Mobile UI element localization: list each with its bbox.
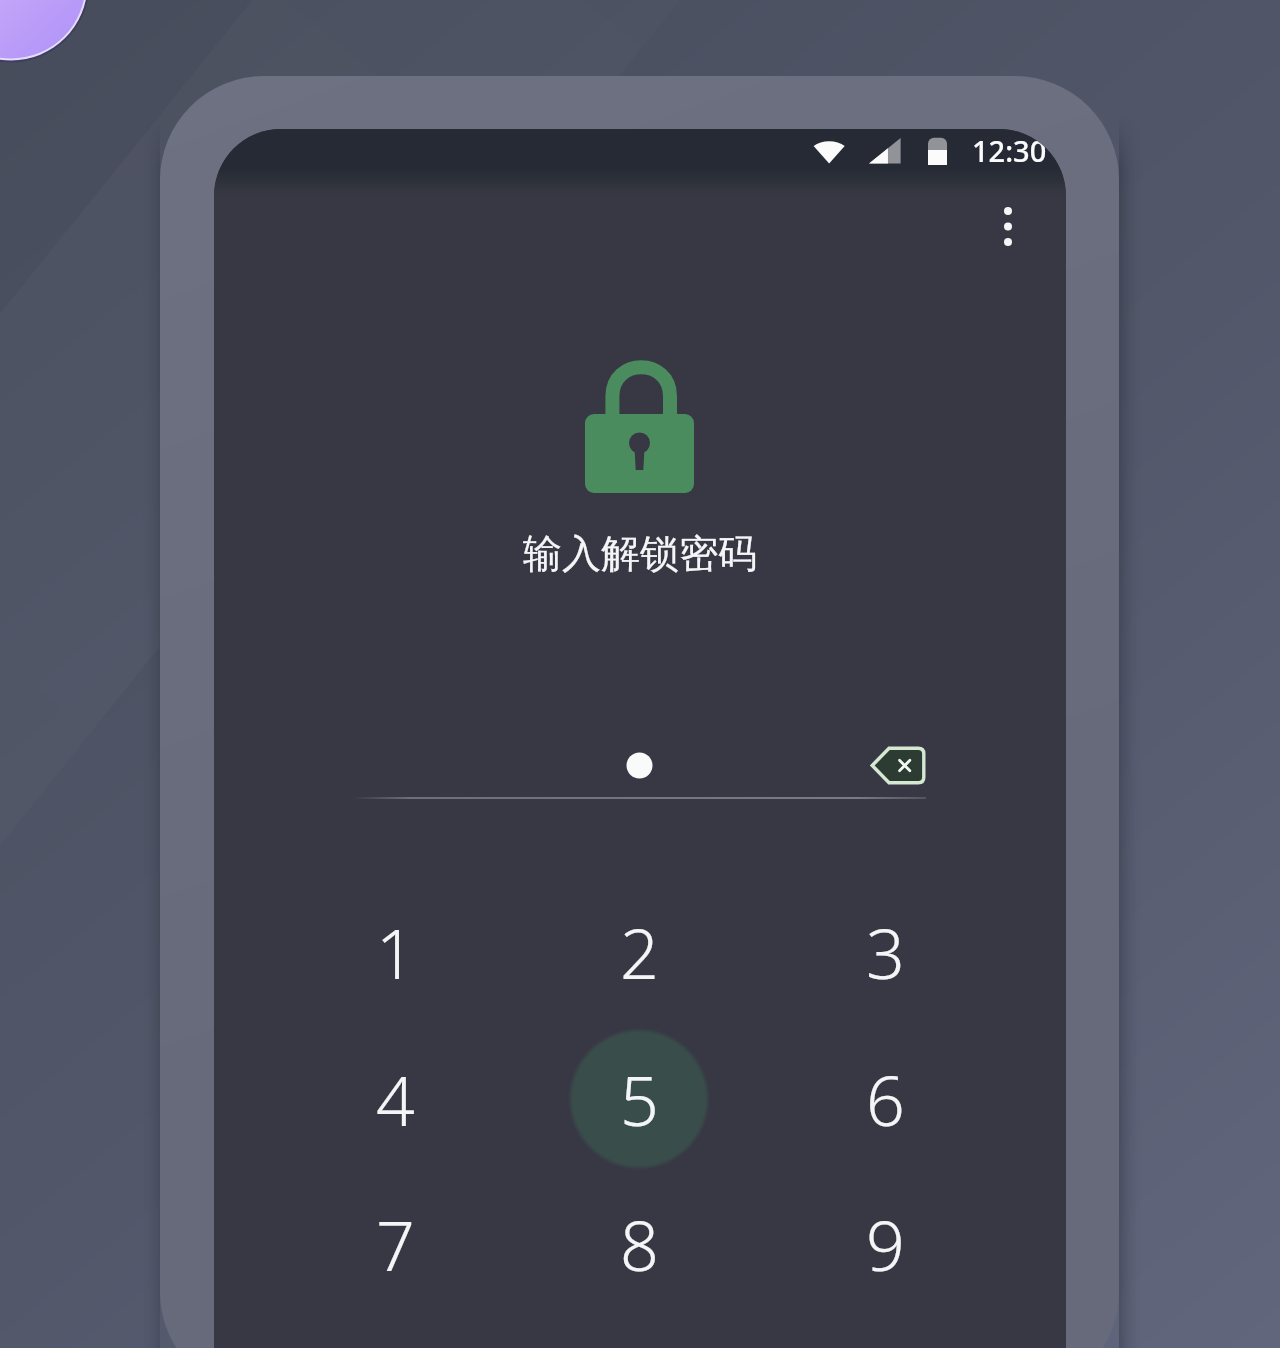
staticText: 6: [866, 1053, 905, 1146]
staticText: 8: [620, 1198, 659, 1291]
button[interactable]: 3: [819, 886, 951, 1018]
button[interactable]: 1: [329, 886, 461, 1018]
staticText: 2: [620, 906, 659, 999]
button[interactable]: 4: [329, 1033, 461, 1165]
staticText: 3: [866, 906, 905, 999]
button[interactable]: 5: [573, 1033, 705, 1165]
staticText: 7: [376, 1198, 415, 1291]
staticText: 4: [376, 1053, 415, 1146]
staticText: 9: [866, 1198, 905, 1291]
staticText: 5: [620, 1053, 659, 1146]
staticText: 1: [376, 906, 415, 999]
button[interactable]: 2: [573, 886, 705, 1018]
button[interactable]: 6: [819, 1033, 951, 1165]
staticText: 12:30: [972, 131, 1047, 170]
button[interactable]: More options: [978, 196, 1038, 256]
button[interactable]: 8: [573, 1178, 705, 1310]
button[interactable]: 7: [329, 1178, 461, 1310]
button[interactable]: 9: [819, 1178, 951, 1310]
button[interactable]: Backspace: [861, 737, 935, 793]
staticText: 输入解锁密码: [214, 529, 1066, 578]
